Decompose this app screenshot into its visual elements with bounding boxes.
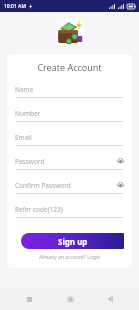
button[interactable]: Refer code(123) <box>15 202 124 226</box>
staticText: Password <box>15 157 117 166</box>
staticText: Confirm Password <box>15 181 117 190</box>
button[interactable]: Name <box>15 82 124 106</box>
button[interactable]: Toggle password visibility <box>117 158 124 165</box>
staticText: Refer code(123) <box>15 205 124 214</box>
button[interactable]: Sign up <box>21 233 124 249</box>
button[interactable]: Number <box>15 106 124 130</box>
staticText: Create Account <box>15 61 124 73</box>
button[interactable]: Email <box>15 130 124 154</box>
staticText: Name <box>15 85 124 94</box>
button[interactable]: Home <box>59 288 81 310</box>
button[interactable]: Recent apps <box>18 288 40 310</box>
staticText: Already an account? Login <box>39 254 101 261</box>
button[interactable]: Back <box>99 288 121 310</box>
button[interactable]: Confirm Password <box>15 178 124 202</box>
staticText: Email <box>15 133 124 142</box>
button[interactable]: Toggle password visibility <box>117 182 124 189</box>
button[interactable]: Password <box>15 154 124 178</box>
button[interactable]: Already an account? Login <box>15 254 124 261</box>
staticText: Number <box>15 109 124 118</box>
staticText: Sign up <box>58 236 88 247</box>
staticText: 10:01 AM <box>4 3 26 10</box>
